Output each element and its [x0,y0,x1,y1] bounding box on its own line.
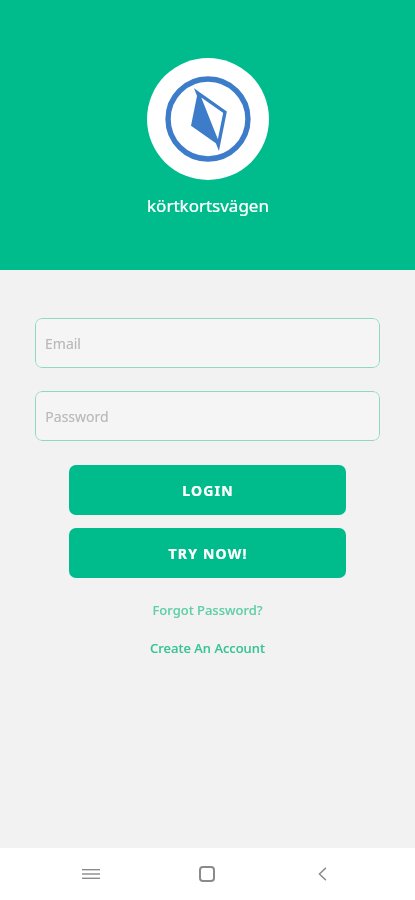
button[interactable]: TRY NOW! [69,528,346,578]
button[interactable]: Password [35,391,380,441]
staticText: LOGIN [182,481,234,500]
staticText: TRY NOW! [168,544,248,563]
staticText: Password [45,407,109,426]
staticText: Forgot Password? [152,601,263,619]
button[interactable]: LOGIN [69,465,346,515]
button[interactable]: Create An Account [0,639,415,657]
button[interactable]: Home [183,850,231,898]
button[interactable]: Forgot Password? [0,601,415,619]
staticText: Email [45,334,81,353]
staticText: Create An Account [150,639,265,657]
button[interactable]: Recent apps [67,850,115,898]
button[interactable]: Back [299,850,347,898]
button[interactable]: Email [35,318,380,368]
staticText: körtkortsvägen [147,194,269,217]
